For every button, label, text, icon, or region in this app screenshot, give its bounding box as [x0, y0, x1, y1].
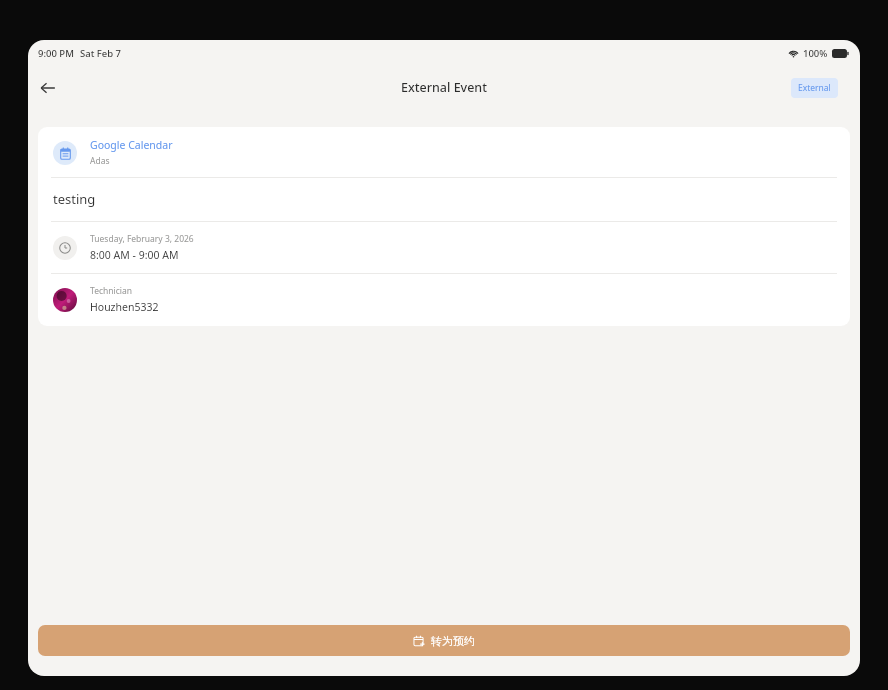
- staticText: Tuesday, February 3, 2026: [90, 233, 194, 245]
- staticText: 9:00 PM: [38, 47, 74, 60]
- staticText: Sat Feb 7: [80, 47, 122, 60]
- staticText: Google Calendar: [90, 138, 173, 152]
- staticText: External: [798, 82, 831, 94]
- button[interactable]: 转为预约: [38, 625, 850, 656]
- staticText: Houzhen5332: [90, 300, 159, 314]
- button[interactable]: Back: [34, 74, 62, 102]
- button[interactable]: Technician: [38, 274, 850, 326]
- staticText: External Event: [401, 79, 487, 96]
- staticText: testing: [53, 190, 96, 208]
- button[interactable]: Google Calendar: [38, 127, 850, 177]
- button[interactable]: Tuesday, February 3, 2026: [38, 222, 850, 273]
- staticText: Technician: [90, 285, 132, 297]
- staticText: 8:00 AM - 9:00 AM: [90, 248, 179, 262]
- staticText: 转为预约: [431, 634, 475, 648]
- staticText: 100%: [803, 47, 828, 60]
- staticText: Adas: [90, 155, 110, 167]
- button[interactable]: External: [791, 78, 838, 98]
- button[interactable]: testing: [38, 178, 850, 221]
